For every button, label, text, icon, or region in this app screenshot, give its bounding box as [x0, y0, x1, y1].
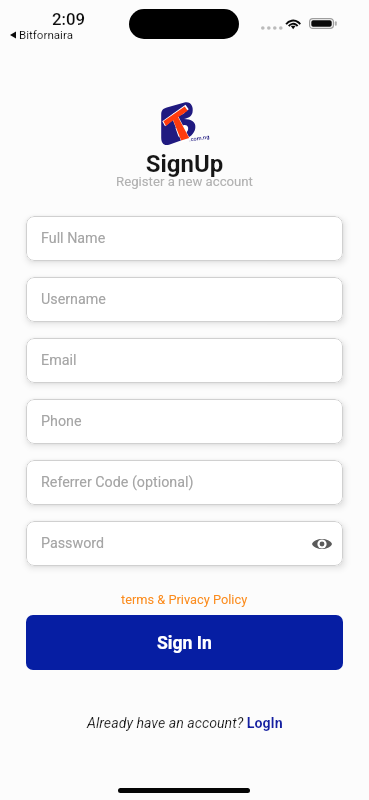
- other: Show password: [312, 537, 332, 551]
- button[interactable]: Full Name: [26, 216, 343, 261]
- button[interactable]: Referrer Code (optional): [26, 460, 343, 505]
- staticText: SignUp: [0, 150, 369, 178]
- staticText: Password: [41, 535, 312, 552]
- staticText: Referrer Code (optional): [41, 474, 332, 491]
- staticText: Phone: [41, 413, 332, 430]
- staticText: .com.ng: [189, 133, 210, 144]
- button[interactable]: Password: [26, 521, 343, 566]
- staticText: Sign In: [157, 633, 212, 654]
- button[interactable]: Already have an account? LogIn: [81, 712, 289, 735]
- button[interactable]: Username: [26, 277, 343, 322]
- button[interactable]: Phone: [26, 399, 343, 444]
- staticText: Full Name: [41, 230, 332, 247]
- button[interactable]: terms & Privacy Policy: [115, 589, 254, 610]
- staticText: Username: [41, 291, 332, 308]
- button[interactable]: Sign In: [26, 615, 343, 670]
- staticText: Bitfornaira: [19, 28, 73, 42]
- staticText: 2:09: [52, 9, 86, 29]
- staticText: Already have an account? LogIn: [87, 715, 283, 732]
- staticText: Register a new account: [0, 174, 369, 189]
- staticText: Email: [41, 352, 332, 369]
- staticText: terms & Privacy Policy: [121, 592, 248, 607]
- button[interactable]: Email: [26, 338, 343, 383]
